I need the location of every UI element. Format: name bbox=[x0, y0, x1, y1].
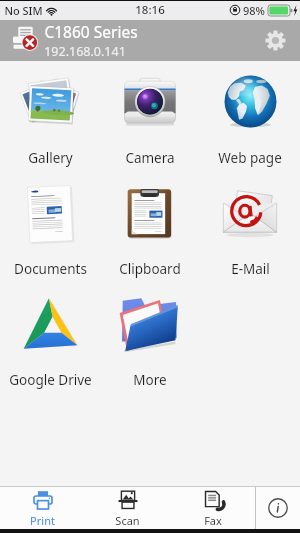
staticText: C1860 Series bbox=[44, 21, 138, 42]
button[interactable]: Google Drive bbox=[0, 283, 100, 394]
staticText: 98% bbox=[243, 3, 265, 18]
staticText: More bbox=[133, 371, 167, 389]
button[interactable]: More bbox=[100, 283, 200, 394]
staticText: Clipboard bbox=[119, 260, 181, 278]
staticText: Fax bbox=[204, 513, 222, 528]
button[interactable]: Info bbox=[256, 487, 300, 529]
staticText: Documents bbox=[14, 260, 87, 278]
staticText: Print bbox=[30, 513, 55, 528]
staticText: Google Drive bbox=[9, 371, 92, 389]
staticText: No SIM bbox=[4, 3, 43, 18]
button[interactable]: Print bbox=[0, 487, 85, 529]
staticText: Camera bbox=[125, 149, 175, 167]
button[interactable]: Camera bbox=[100, 61, 200, 172]
button[interactable]: E-Mail bbox=[200, 172, 300, 283]
staticText: Web page bbox=[218, 149, 282, 167]
button[interactable]: Web page bbox=[200, 61, 300, 172]
staticText: Gallery bbox=[28, 149, 73, 167]
staticText: 18:16 bbox=[135, 2, 165, 18]
button[interactable]: Fax bbox=[170, 487, 255, 529]
button[interactable]: Scan bbox=[85, 487, 170, 529]
staticText: E-Mail bbox=[231, 260, 270, 278]
staticText: 192.168.0.141 bbox=[44, 43, 126, 60]
button[interactable]: Documents bbox=[0, 172, 100, 283]
button[interactable]: Gallery bbox=[0, 61, 100, 172]
button[interactable]: Clipboard bbox=[100, 172, 200, 283]
button[interactable]: Settings bbox=[255, 20, 296, 61]
staticText: Scan bbox=[115, 513, 140, 528]
